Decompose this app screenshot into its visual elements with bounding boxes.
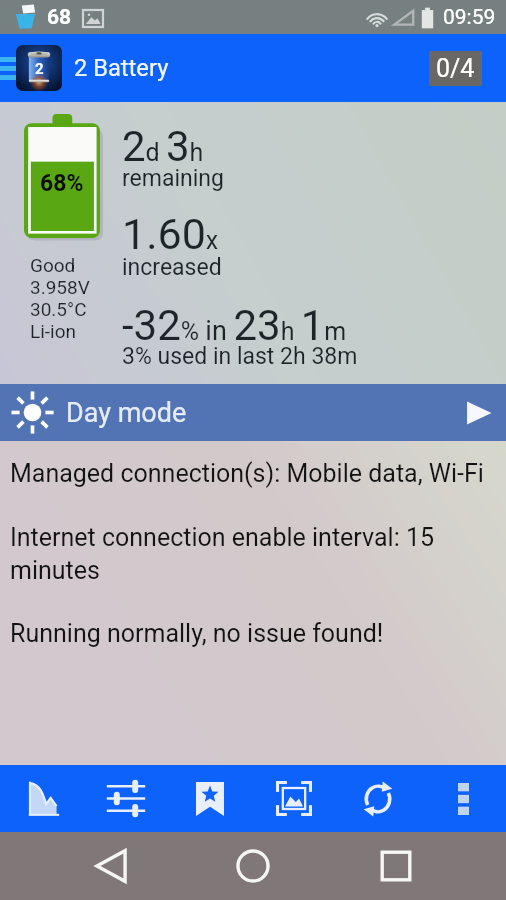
staticText: 3% used in last 2h 38m xyxy=(122,343,358,370)
staticText: 0/4 xyxy=(436,54,475,83)
other: Next xyxy=(466,400,492,426)
staticText: remaining xyxy=(122,165,224,192)
staticText: 2 xyxy=(35,60,44,78)
staticText: 3.958V xyxy=(30,276,90,298)
staticText: 2d 3h xyxy=(122,122,204,171)
button[interactable]: Home xyxy=(221,834,285,898)
staticText: Internet connection enable interval: 15 xyxy=(10,523,434,556)
staticText: 1.60x xyxy=(122,209,219,259)
button[interactable]: Settings xyxy=(84,765,168,832)
staticText: Running normally, no issue found! xyxy=(10,619,384,652)
staticText: Li-ion xyxy=(30,320,77,342)
staticText: Day mode xyxy=(66,397,187,429)
button[interactable]: Battery usage chart xyxy=(0,765,84,832)
button[interactable]: 0/4 xyxy=(429,51,482,86)
staticText: 68% xyxy=(40,170,84,197)
button[interactable]: Back xyxy=(79,834,143,898)
staticText: Good xyxy=(30,254,76,276)
staticText: Managed connection(s): Mobile data, Wi-F… xyxy=(10,459,484,492)
button[interactable]: More options xyxy=(420,765,506,832)
button[interactable]: Screenshot xyxy=(252,765,336,832)
button[interactable]: Day mode xyxy=(0,384,506,441)
staticText: 2 Battery xyxy=(74,54,169,82)
button[interactable]: Recent apps xyxy=(364,834,428,898)
staticText: 30.5°C xyxy=(30,298,87,320)
button[interactable]: 68% xyxy=(0,102,506,384)
button[interactable]: Bookmarks xyxy=(168,765,252,832)
staticText: minutes xyxy=(10,556,100,589)
button[interactable]: Refresh xyxy=(336,765,420,832)
staticText: 09:59 xyxy=(443,5,496,30)
staticText: -32% in 23h 1m xyxy=(122,301,347,350)
staticText: 68 xyxy=(47,5,72,30)
button[interactable]: Open navigation menu xyxy=(0,57,16,80)
staticText: increased xyxy=(122,254,222,281)
